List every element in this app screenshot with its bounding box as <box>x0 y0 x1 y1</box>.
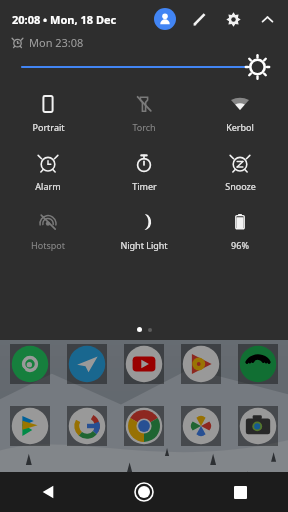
button[interactable]: Spotify <box>238 344 278 384</box>
button[interactable]: Edit tiles <box>188 8 210 30</box>
staticText: Timer <box>132 180 157 192</box>
button[interactable]: Chrome <box>124 406 164 446</box>
button[interactable]: Torch <box>96 92 192 135</box>
button[interactable]: Photos <box>181 406 221 446</box>
button[interactable]: Play Music <box>181 344 221 384</box>
staticText: Alarm <box>35 180 61 192</box>
button[interactable]: Mon 23:08 <box>12 35 84 50</box>
button[interactable]: Settings <box>222 8 244 30</box>
button[interactable]: Night Light <box>96 210 192 253</box>
staticText: Hotspot <box>31 239 65 251</box>
button[interactable]: Portrait <box>0 92 96 135</box>
button[interactable]: User account <box>154 8 176 30</box>
button[interactable]: Camera <box>238 406 278 446</box>
staticText: Mon 23:08 <box>29 35 84 50</box>
staticText: 96% <box>231 239 249 251</box>
button[interactable]: Back <box>0 472 96 512</box>
button[interactable]: Collapse <box>256 8 278 30</box>
button[interactable]: Home <box>96 472 192 512</box>
button[interactable]: WhatsApp <box>10 344 50 384</box>
button[interactable]: Play Store <box>10 406 50 446</box>
button[interactable]: Hotspot <box>0 210 96 253</box>
button[interactable]: Brightness <box>22 50 266 84</box>
button[interactable]: Google <box>67 406 107 446</box>
staticText: Torch <box>132 121 156 133</box>
staticText: Snooze <box>225 180 256 192</box>
button[interactable]: Alarm <box>0 151 96 194</box>
button[interactable]: YouTube <box>124 344 164 384</box>
button[interactable]: Kerbol <box>192 92 288 135</box>
button[interactable]: Recent apps <box>192 472 288 512</box>
button[interactable]: Timer <box>96 151 192 194</box>
staticText: Kerbol <box>226 121 254 133</box>
staticText: Night Light <box>120 239 168 251</box>
button[interactable]: Snooze <box>192 151 288 194</box>
button[interactable]: 96% <box>192 210 288 253</box>
button[interactable]: Telegram <box>67 344 107 384</box>
staticText: 20:08 • Mon, 18 Dec <box>12 12 117 27</box>
staticText: Portrait <box>32 121 65 133</box>
